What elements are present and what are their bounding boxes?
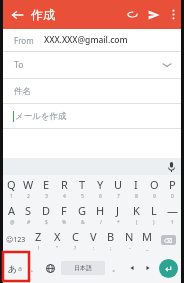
button[interactable]: M: [138, 227, 156, 253]
staticText: #: [27, 219, 31, 226]
button[interactable]: 、: [26, 253, 42, 283]
button[interactable]: U: [109, 175, 127, 201]
staticText: ?: [74, 245, 77, 252]
button[interactable]: C: [66, 227, 84, 253]
button[interactable]: L: [145, 201, 163, 227]
staticText: $: [45, 219, 48, 226]
staticText: 7: [117, 193, 120, 200]
staticText: I: [134, 177, 138, 192]
button[interactable]: Send: [143, 0, 165, 29]
button[interactable]: F: [55, 201, 73, 227]
staticText: %: [62, 219, 67, 226]
button[interactable]: Enter: [156, 253, 181, 283]
staticText: _: [146, 245, 149, 252]
button[interactable]: Move cursor left: [124, 253, 140, 283]
button[interactable]: N: [120, 227, 138, 253]
staticText: To: [14, 59, 24, 71]
staticText: W: [23, 177, 34, 192]
staticText: 日本語: [74, 264, 92, 272]
button[interactable]: Voice input: [161, 158, 181, 175]
button[interactable]: G: [73, 201, 91, 227]
button[interactable]: —: [163, 201, 181, 227]
staticText: T: [79, 177, 86, 192]
button[interactable]: J: [109, 201, 127, 227]
staticText: 8: [135, 193, 138, 200]
button[interactable]: Attach file: [121, 0, 143, 29]
staticText: *: [117, 219, 120, 226]
button[interactable]: E: [37, 175, 55, 201]
staticText: X: [54, 229, 61, 244]
button[interactable]: 日本語: [61, 261, 105, 275]
staticText: -: [129, 245, 131, 252]
button[interactable]: O: [145, 175, 163, 201]
staticText: —: [167, 203, 178, 218]
button[interactable]: Change keyboard language: [42, 253, 58, 283]
staticText: !: [38, 245, 40, 252]
staticText: 件名: [14, 86, 31, 97]
staticText: @: [10, 219, 15, 226]
staticText: (: [136, 219, 138, 226]
button[interactable]: Symbols: [3, 227, 29, 253]
staticText: 6: [99, 193, 102, 200]
staticText: あ: [8, 263, 18, 274]
button[interactable]: W: [20, 175, 37, 201]
button[interactable]: Z: [29, 227, 48, 253]
button[interactable]: I: [127, 175, 145, 201]
button[interactable]: More options: [165, 0, 181, 29]
button[interactable]: Back: [3, 0, 31, 29]
staticText: C: [72, 229, 79, 244]
staticText: ;: [110, 245, 112, 252]
staticText: E: [43, 177, 50, 192]
button[interactable]: To: [3, 52, 181, 78]
button[interactable]: From: [3, 29, 181, 51]
staticText: 3: [45, 193, 48, 200]
button[interactable]: D: [37, 201, 55, 227]
staticText: G: [78, 203, 87, 218]
staticText: K: [133, 203, 140, 218]
staticText: ↑: [170, 219, 175, 225]
button[interactable]: Q: [3, 175, 20, 201]
button[interactable]: K: [127, 201, 145, 227]
staticText: ↵: [165, 264, 173, 274]
staticText: P: [169, 177, 176, 192]
button[interactable]: Y: [91, 175, 109, 201]
button[interactable]: X: [48, 227, 66, 253]
button[interactable]: メールを作成: [3, 104, 181, 128]
staticText: ☺123: [6, 235, 26, 245]
staticText: Q: [7, 177, 16, 192]
staticText: S: [25, 203, 32, 218]
button[interactable]: 。: [108, 253, 124, 283]
button[interactable]: S: [20, 201, 37, 227]
button[interactable]: H: [91, 201, 109, 227]
button[interactable]: Switch to Japanese: [3, 253, 26, 283]
staticText: J: [116, 203, 120, 218]
staticText: B: [107, 229, 115, 244]
staticText: A: [8, 203, 16, 218]
button[interactable]: T: [73, 175, 91, 201]
staticText: H: [96, 203, 105, 218]
staticText: F: [61, 203, 67, 218]
staticText: ": [56, 245, 59, 252]
staticText: 、: [30, 263, 38, 273]
staticText: 0: [171, 193, 174, 200]
button[interactable]: 件名: [3, 79, 181, 103]
staticText: 作成: [31, 7, 55, 22]
staticText: 5: [81, 193, 84, 200]
button[interactable]: Backspace: [156, 227, 181, 253]
staticText: メールを作成: [15, 111, 67, 122]
button[interactable]: R: [55, 175, 73, 201]
button[interactable]: B: [102, 227, 120, 253]
staticText: N: [125, 229, 134, 244]
staticText: U: [114, 177, 123, 192]
button[interactable]: A: [3, 201, 20, 227]
staticText: 9: [153, 193, 156, 200]
staticText: 1: [10, 193, 13, 200]
staticText: D: [42, 203, 51, 218]
staticText: 4: [63, 193, 66, 200]
button[interactable]: Move cursor right: [140, 253, 156, 283]
button[interactable]: V: [84, 227, 102, 253]
button[interactable]: P: [163, 175, 181, 201]
staticText: a: [18, 264, 22, 274]
staticText: /: [100, 219, 102, 226]
staticText: &: [81, 219, 85, 226]
